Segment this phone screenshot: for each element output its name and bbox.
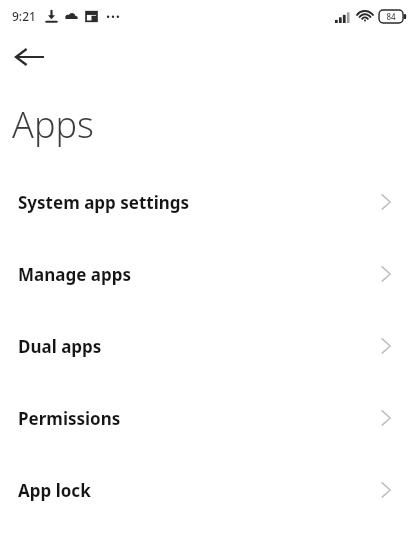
staticText: Apps — [12, 100, 94, 149]
button[interactable]: Permissions — [0, 382, 418, 454]
button[interactable]: System app settings — [0, 166, 418, 238]
button[interactable]: Dual apps — [0, 310, 418, 382]
button[interactable]: Manage apps — [0, 238, 418, 310]
staticText: Dual apps — [18, 335, 381, 358]
staticText: Manage apps — [18, 263, 381, 286]
staticText: Permissions — [18, 407, 381, 430]
staticText: System app settings — [18, 191, 381, 214]
staticText: 9:21 — [12, 8, 36, 24]
button[interactable]: App lock — [0, 454, 418, 526]
button[interactable]: Back — [7, 35, 51, 79]
staticText: App lock — [18, 479, 381, 502]
staticText: 84 — [386, 11, 396, 22]
